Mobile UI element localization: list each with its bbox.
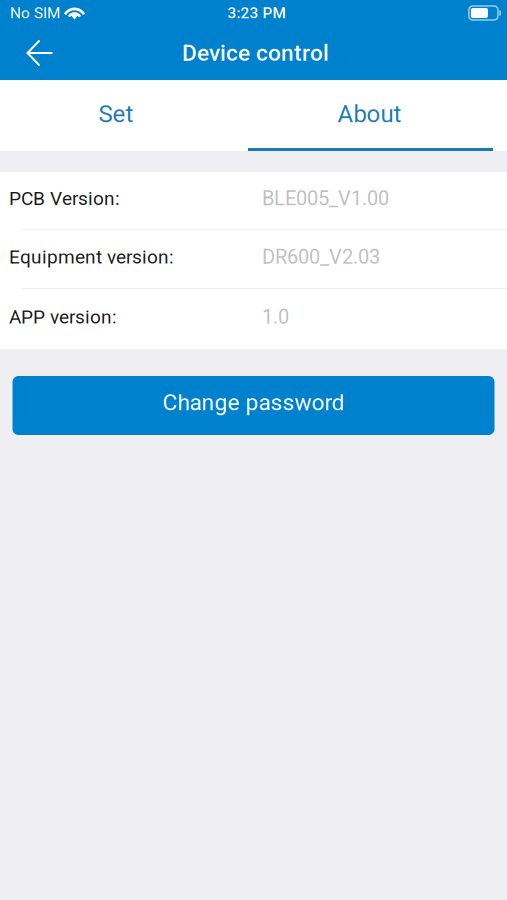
button[interactable]: Set (0, 80, 232, 148)
button[interactable]: Change password (12, 376, 494, 435)
button[interactable]: About (232, 80, 507, 148)
staticText: Change password (162, 389, 344, 416)
staticText: About (337, 100, 401, 128)
staticText: Equipment version: (9, 246, 174, 268)
staticText: DR600_V2.03 (262, 245, 380, 269)
staticText: PCB Version: (9, 187, 120, 210)
staticText: APP version: (9, 306, 117, 328)
staticText: 1.0 (262, 305, 289, 329)
staticText: Device control (182, 40, 329, 66)
staticText: Set (98, 100, 133, 128)
staticText: No SIM (10, 4, 60, 22)
button[interactable]: Back (13, 28, 67, 78)
staticText: BLE005_V1.00 (262, 187, 389, 210)
staticText: 3:23 PM (227, 4, 285, 22)
